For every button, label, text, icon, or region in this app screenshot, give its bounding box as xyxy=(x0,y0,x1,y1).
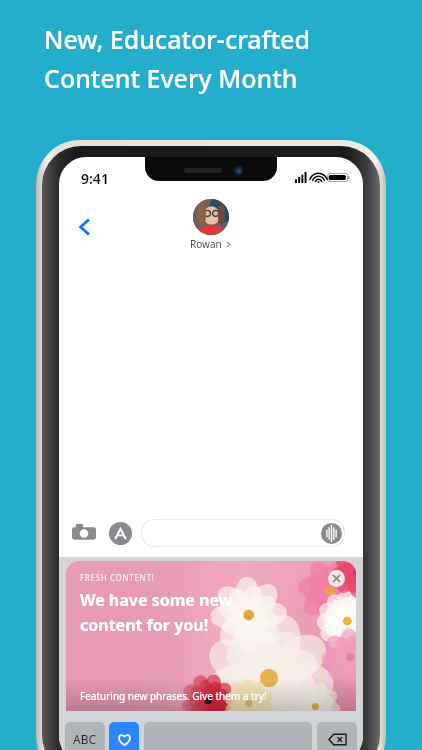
staticText: Content Every Month xyxy=(44,61,298,95)
button[interactable]: Camera xyxy=(69,518,99,548)
other: Audio message xyxy=(321,523,342,544)
staticText: content for you! xyxy=(80,614,209,636)
staticText: ABC xyxy=(73,731,97,747)
button[interactable]: Back xyxy=(63,205,107,249)
button[interactable]: Stickers xyxy=(109,722,139,750)
staticText: We have some new xyxy=(80,589,233,611)
staticText: Featuring new phrases. Give them a try! xyxy=(80,689,267,703)
button[interactable]: Audio message xyxy=(141,519,345,547)
button[interactable]: Close xyxy=(328,570,345,587)
button[interactable]: Delete xyxy=(317,722,357,750)
staticText: 9:41 xyxy=(81,169,109,188)
staticText: New, Educator-crafted xyxy=(44,22,310,56)
button[interactable]: Apps xyxy=(105,518,135,548)
button[interactable]: ABC xyxy=(65,722,105,750)
staticText: Rowan xyxy=(190,237,222,251)
staticText: FRESH CONTENT! xyxy=(80,572,155,583)
button[interactable]: FRESH CONTENT! xyxy=(66,561,356,711)
button[interactable]: Rowan xyxy=(190,199,232,251)
